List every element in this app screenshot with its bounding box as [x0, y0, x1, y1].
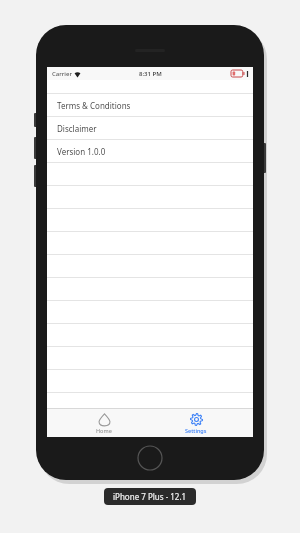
button[interactable]: Home [69, 410, 139, 437]
staticText: Home [96, 427, 112, 434]
staticText: Disclaimer [57, 123, 97, 134]
button[interactable]: Version 1.0.0 [47, 140, 253, 162]
staticText: iPhone 7 Plus - 12.1 [113, 491, 187, 502]
button[interactable]: Disclaimer [47, 117, 253, 139]
staticText: Terms & Conditions [57, 100, 131, 111]
button[interactable]: Settings [161, 410, 231, 437]
staticText: Settings [185, 427, 207, 434]
other: Home button [137, 445, 163, 471]
button[interactable]: Terms & Conditions [47, 94, 253, 116]
staticText: 8:31 PM [139, 70, 162, 78]
staticText: Carrier [52, 70, 72, 78]
staticText: Version 1.0.0 [57, 146, 106, 157]
